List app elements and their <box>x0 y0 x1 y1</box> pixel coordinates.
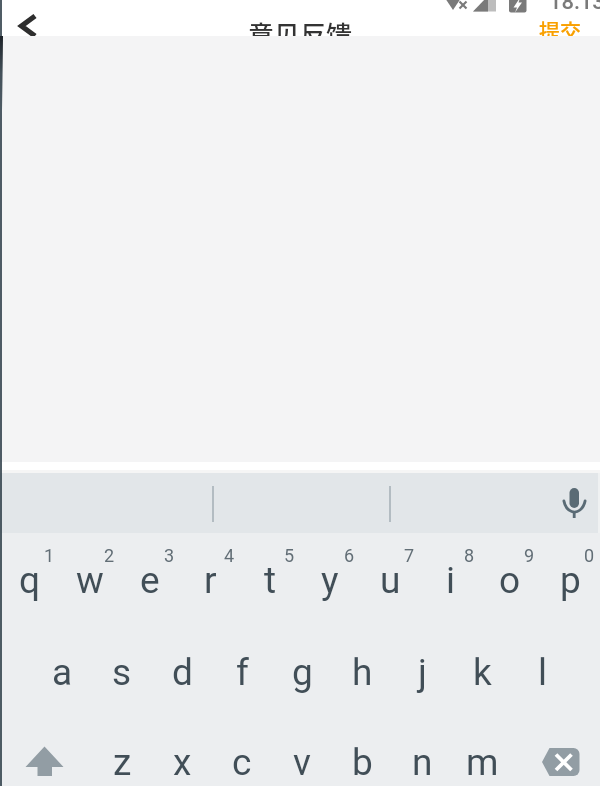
staticText: c <box>232 741 252 784</box>
button[interactable]: n <box>392 732 452 786</box>
staticText: u <box>380 559 401 602</box>
staticText: z <box>113 741 132 784</box>
staticText: 7 <box>404 545 415 566</box>
staticText: 18:13 <box>549 0 600 15</box>
staticText: p <box>560 559 581 602</box>
button[interactable]: k <box>452 642 512 702</box>
staticText: l <box>538 651 547 694</box>
staticText: s <box>112 651 132 694</box>
staticText: 意见反馈 <box>248 15 353 53</box>
staticText: x <box>173 741 192 784</box>
button[interactable]: t <box>240 550 300 610</box>
staticText: q <box>19 559 41 602</box>
button[interactable]: x <box>152 732 212 786</box>
staticText: n <box>412 741 433 784</box>
staticText: i <box>446 559 455 602</box>
button[interactable] <box>528 732 588 786</box>
button[interactable]: c <box>212 732 272 786</box>
button[interactable]: u <box>360 550 420 610</box>
button[interactable]: d <box>152 642 212 702</box>
staticText: 9 <box>524 545 535 566</box>
staticText: 6 <box>344 545 355 566</box>
staticText: k <box>473 651 492 694</box>
button[interactable]: j <box>392 642 452 702</box>
staticText: 提交 <box>539 15 581 45</box>
button[interactable] <box>0 36 600 462</box>
button[interactable]: r <box>180 550 240 610</box>
button[interactable]: m <box>452 732 512 786</box>
button[interactable] <box>556 481 594 527</box>
button[interactable]: w <box>60 550 120 610</box>
staticText: v <box>293 741 311 784</box>
staticText: w <box>76 559 104 602</box>
staticText: m <box>466 741 499 784</box>
staticText: e <box>140 559 160 602</box>
staticText: 1 <box>44 545 55 566</box>
button[interactable]: g <box>272 642 332 702</box>
staticText: a <box>52 651 73 694</box>
button[interactable]: p <box>540 550 600 610</box>
staticText: f <box>236 651 249 694</box>
button[interactable]: q <box>0 550 60 610</box>
staticText: j <box>418 651 427 694</box>
button[interactable]: v <box>272 732 332 786</box>
staticText: 4 <box>224 545 235 566</box>
button[interactable] <box>6 6 52 42</box>
staticText: 0 <box>584 545 595 566</box>
staticText: 8 <box>464 545 475 566</box>
button[interactable]: 提交 <box>528 12 592 48</box>
button[interactable]: s <box>92 642 152 702</box>
button[interactable] <box>15 732 75 786</box>
button[interactable]: l <box>512 642 572 702</box>
staticText: h <box>352 651 373 694</box>
button[interactable]: e <box>120 550 180 610</box>
staticText: g <box>292 651 313 694</box>
button[interactable]: z <box>92 732 152 786</box>
staticText: 5 <box>284 545 295 566</box>
staticText: b <box>352 741 373 784</box>
button[interactable]: a <box>32 642 92 702</box>
staticText: 2 <box>104 545 115 566</box>
staticText: y <box>321 559 339 602</box>
staticText: t <box>264 559 277 602</box>
staticText: 3 <box>164 545 175 566</box>
button[interactable]: y <box>300 550 360 610</box>
button[interactable]: i <box>420 550 480 610</box>
button[interactable]: h <box>332 642 392 702</box>
staticText: r <box>204 559 217 602</box>
button[interactable]: o <box>480 550 540 610</box>
button[interactable]: f <box>212 642 272 702</box>
staticText: o <box>499 559 521 602</box>
staticText: d <box>172 651 193 694</box>
button[interactable]: b <box>332 732 392 786</box>
